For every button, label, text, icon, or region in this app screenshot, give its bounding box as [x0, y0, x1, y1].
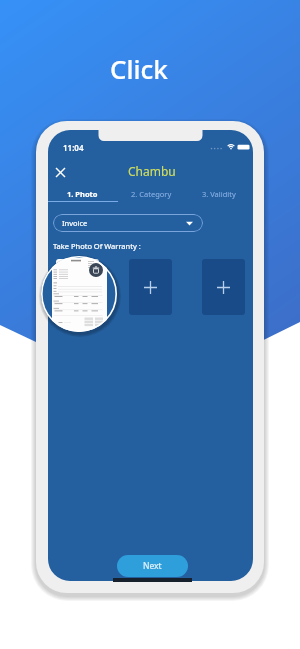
button[interactable]: Delete photo: [89, 263, 103, 277]
button[interactable]: 1. Photo: [48, 186, 117, 202]
staticText: 1. Photo: [67, 189, 98, 199]
button[interactable]: Add photo: [129, 259, 172, 315]
staticText: 3. Validity: [202, 189, 236, 199]
button[interactable]: Invoice: [53, 214, 203, 232]
button[interactable]: 2. Category: [117, 186, 185, 202]
staticText: Next: [143, 560, 162, 572]
staticText: Take Photo Of Warranty :: [53, 241, 141, 251]
staticText: 2. Category: [131, 189, 172, 199]
button[interactable]: Close: [51, 163, 69, 181]
button[interactable]: Warranty photo: [56, 259, 99, 315]
staticText: Invoice: [62, 218, 88, 228]
button[interactable]: Next: [117, 555, 188, 577]
button[interactable]: Add photo: [202, 259, 245, 315]
staticText: Chambu: [128, 163, 176, 179]
staticText: 11:04: [63, 142, 84, 153]
staticText: Click: [110, 51, 168, 86]
button[interactable]: 3. Validity: [185, 186, 253, 202]
